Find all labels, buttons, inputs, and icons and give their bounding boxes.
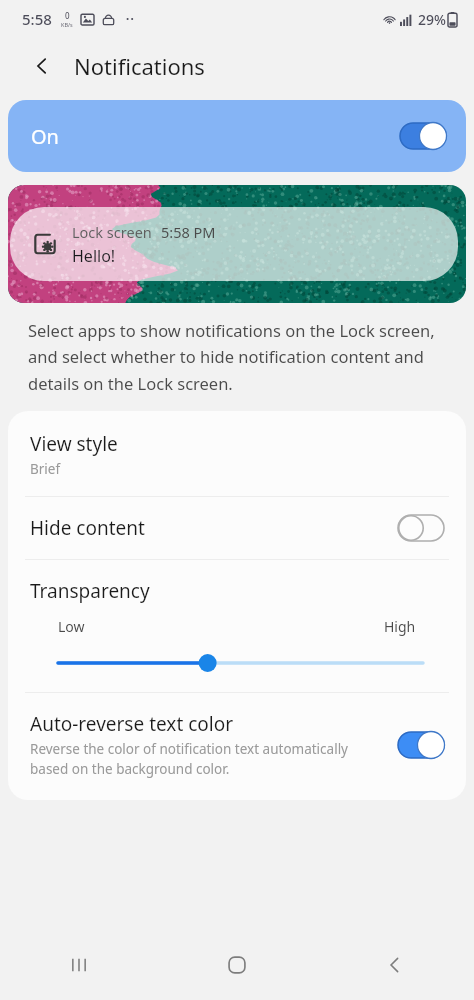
staticText: Brief: [30, 460, 61, 478]
staticText: Hello!: [72, 245, 116, 267]
staticText: 29%: [418, 10, 446, 29]
staticText: 0: [65, 10, 70, 21]
button[interactable]: Recents: [0, 930, 158, 1000]
staticText: Reverse the color of notification text a…: [30, 740, 388, 778]
staticText: 5:58: [22, 9, 52, 29]
staticText: Low: [58, 617, 85, 636]
staticText: KB/s: [61, 21, 73, 28]
staticText: Notifications: [74, 51, 205, 81]
staticText: View style: [30, 431, 118, 457]
button[interactable]: Auto-reverse text color: [8, 693, 466, 800]
button[interactable]: Hide content: [8, 497, 466, 559]
staticText: Auto-reverse text color: [30, 711, 234, 737]
staticText: Hide content: [30, 515, 398, 541]
staticText: 5:58 PM: [161, 222, 216, 242]
staticText: On: [31, 123, 59, 150]
staticText: High: [384, 617, 416, 636]
staticText: Lock screen: [72, 222, 152, 242]
button[interactable]: [8, 648, 466, 678]
button[interactable]: On: [8, 100, 466, 172]
button[interactable]: Back: [316, 930, 474, 1000]
button[interactable]: Back: [22, 46, 62, 86]
staticText: Transparency: [30, 578, 150, 604]
button[interactable]: Home: [158, 930, 316, 1000]
button[interactable]: Lock screen: [8, 185, 466, 303]
staticText: Select apps to show notifications on the…: [28, 319, 446, 395]
button[interactable]: View style: [8, 411, 466, 496]
